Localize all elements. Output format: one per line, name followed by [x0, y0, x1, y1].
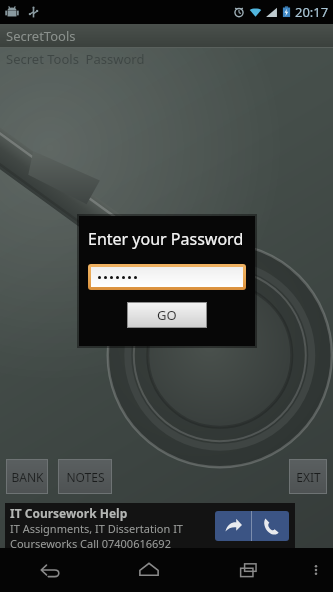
staticText: GO — [157, 306, 177, 324]
button[interactable]: EXIT — [290, 460, 326, 493]
button[interactable]: GO — [128, 303, 206, 327]
staticText: Enter your Password — [88, 228, 244, 250]
staticText: BANK — [11, 469, 44, 485]
button[interactable]: NOTES — [59, 460, 111, 493]
staticText: IT Assignments, IT Dissertation IT — [10, 521, 183, 536]
button[interactable] — [91, 267, 243, 287]
button[interactable]: Home — [99, 548, 199, 592]
staticText: SecretTools — [6, 27, 76, 45]
staticText: 20:17 — [295, 3, 329, 21]
staticText: IT Coursework Help — [10, 505, 128, 521]
button[interactable]: BANK — [7, 460, 47, 493]
button[interactable]: Call — [252, 511, 289, 541]
button[interactable]: Recent apps — [199, 548, 299, 592]
staticText: EXIT — [296, 469, 321, 485]
button[interactable]: Open ad — [215, 511, 251, 541]
staticText: Courseworks Call 07400616692 — [10, 536, 171, 548]
button[interactable]: IT Coursework Help — [5, 503, 295, 548]
button[interactable]: Back — [0, 548, 99, 592]
staticText: NOTES — [66, 469, 105, 485]
button[interactable]: More options — [299, 548, 333, 592]
staticText: Secret Tools Password — [6, 50, 145, 68]
